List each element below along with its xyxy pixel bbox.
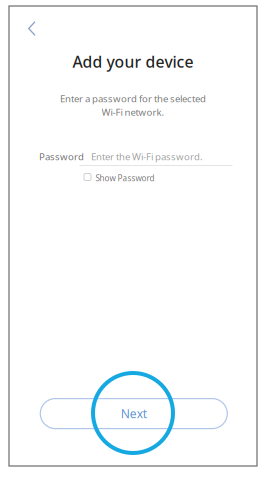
button[interactable]: Back: [19, 14, 47, 44]
staticText: Enter the Wi-Fi password.: [91, 150, 203, 163]
staticText: Next: [121, 405, 147, 422]
staticText: Enter a password for the selected: [60, 92, 206, 105]
staticText: Password: [39, 150, 84, 163]
staticText: Show Password: [95, 172, 154, 184]
button[interactable]: Next: [40, 399, 227, 429]
staticText: Wi-Fi network.: [101, 105, 164, 119]
staticText: Add your device: [72, 51, 193, 72]
button[interactable]: Show Password: [84, 171, 154, 183]
